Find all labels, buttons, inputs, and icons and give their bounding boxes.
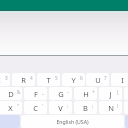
- button[interactable]: 3: [0, 73, 10, 86]
- button[interactable]: 6: [62, 73, 85, 86]
- button[interactable]: +: [74, 87, 97, 100]
- staticText: G: [58, 89, 64, 99]
- staticText: 7: [104, 75, 107, 81]
- staticText: 6: [80, 75, 83, 81]
- staticText: (: [117, 89, 119, 95]
- button[interactable]: 7: [86, 73, 109, 86]
- button[interactable]: (: [99, 87, 122, 100]
- button[interactable]: ": [0, 101, 22, 114]
- button[interactable]: &: [0, 87, 22, 100]
- staticText: ": [17, 103, 19, 109]
- staticText: :: [67, 103, 69, 109]
- staticText: T: [46, 75, 51, 85]
- staticText: &: [17, 89, 21, 95]
- staticText: Y: [71, 75, 76, 85]
- staticText: -: [67, 89, 69, 95]
- staticText: F: [34, 89, 38, 99]
- staticText: I: [121, 75, 124, 85]
- button[interactable]: ;: [74, 101, 97, 114]
- staticText: B: [83, 103, 88, 113]
- staticText: 5: [55, 75, 58, 81]
- staticText: !: [117, 103, 119, 109]
- staticText: 3: [5, 75, 8, 81]
- staticText: E: [0, 75, 1, 85]
- staticText: R: [21, 75, 26, 85]
- staticText: V: [58, 103, 63, 113]
- staticText: _: [42, 89, 45, 95]
- button[interactable]: -: [49, 87, 72, 100]
- staticText: U: [95, 75, 101, 85]
- button[interactable]: Enter: [125, 115, 128, 128]
- staticText: ;: [92, 103, 94, 109]
- staticText: H: [83, 89, 89, 99]
- staticText: 4: [30, 75, 33, 81]
- button[interactable]: 8: [111, 73, 128, 86]
- staticText: J: [109, 89, 112, 99]
- button[interactable]: _: [24, 87, 47, 100]
- staticText: English (USA): [56, 118, 89, 125]
- button[interactable]: 4: [12, 73, 35, 86]
- button[interactable]: !: [99, 101, 122, 114]
- button[interactable]: ': [24, 101, 47, 114]
- staticText: X: [8, 103, 13, 113]
- button[interactable]: :: [49, 101, 72, 114]
- staticText: N: [108, 103, 114, 113]
- staticText: ': [42, 103, 44, 109]
- staticText: D: [8, 89, 14, 99]
- button[interactable]: 5: [37, 73, 60, 86]
- staticText: C: [33, 103, 38, 113]
- button[interactable]: English (USA): [21, 115, 124, 128]
- staticText: +: [92, 89, 95, 95]
